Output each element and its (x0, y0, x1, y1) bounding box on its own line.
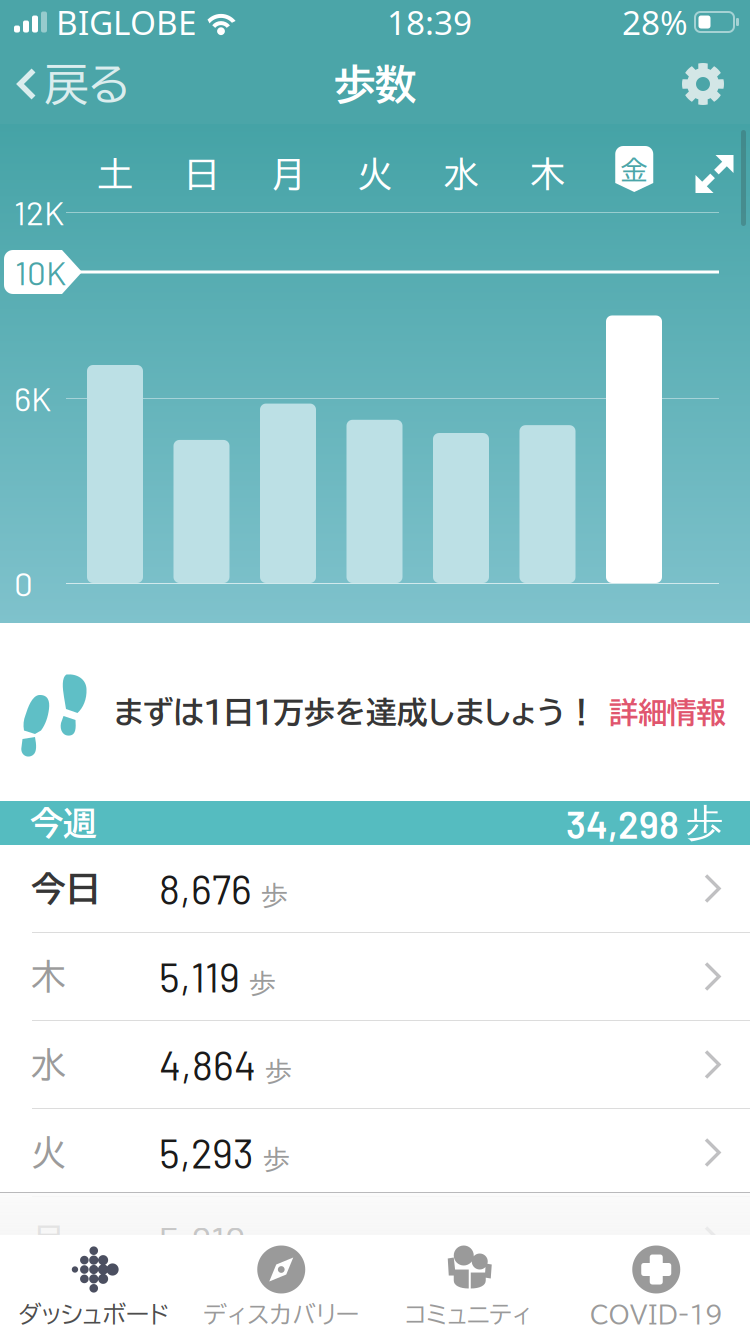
staticText: 水 (444, 157, 479, 191)
button[interactable]: グラフを拡大 (677, 137, 750, 211)
staticText: 5,119 (159, 952, 240, 1000)
button[interactable]: 土 (72, 137, 158, 211)
staticText: 木 (31, 959, 66, 994)
staticText: COVID-19 (590, 1302, 723, 1326)
button[interactable]: コミュニティ (375, 1235, 562, 1334)
staticText: 木 (530, 157, 565, 191)
button[interactable]: 詳細情報 (597, 675, 725, 749)
staticText: 歩 (246, 1234, 282, 1261)
staticText: 34,298 歩 (566, 799, 723, 846)
staticText: 5,293 (159, 1128, 254, 1176)
button[interactable]: ダッシュボード (0, 1235, 187, 1334)
button[interactable]: 木 (504, 137, 591, 211)
button[interactable]: 火 (331, 137, 418, 211)
staticText: 今日 (31, 871, 101, 906)
button[interactable]: COVID-19 (562, 1235, 750, 1334)
staticText: 火 (357, 157, 392, 191)
staticText: 4,864 (159, 1040, 256, 1088)
button[interactable]: ディスカバリー (187, 1235, 375, 1334)
staticText: 詳細情報 (609, 697, 725, 727)
staticText: 18:39 (387, 0, 472, 44)
staticText: 歩 (252, 882, 288, 909)
staticText: 28% (622, 0, 688, 44)
staticText: 歩 (240, 970, 276, 997)
button[interactable]: 水 (418, 137, 504, 211)
staticText: 6K (14, 378, 51, 418)
staticText: 金 (621, 157, 648, 183)
staticText: BIGLOBE (56, 0, 197, 44)
staticText: まずは１日１万歩を達成しましょう！ (114, 697, 597, 727)
button[interactable]: 設定 (660, 44, 750, 124)
button[interactable]: 木 (0, 933, 750, 1020)
staticText: 歩 (254, 1146, 290, 1173)
staticText: ディスカバリー (203, 1302, 359, 1326)
staticText: 月 (31, 1223, 66, 1258)
staticText: 12K (14, 192, 64, 232)
staticText: 戻る (44, 62, 130, 106)
button[interactable]: 月 (245, 137, 331, 211)
button[interactable]: 今日 (0, 845, 750, 932)
button[interactable]: 火 (0, 1109, 750, 1196)
staticText: 8,676 (159, 864, 252, 912)
staticText: ダッシュボード (18, 1302, 169, 1326)
staticText: 土 (98, 157, 133, 191)
staticText: 水 (31, 1047, 66, 1082)
staticText: 月 (271, 157, 306, 191)
button[interactable]: 水 (0, 1021, 750, 1108)
button[interactable]: 月 (0, 1197, 750, 1284)
staticText: 10K (15, 252, 66, 292)
button[interactable]: 戻る (0, 44, 144, 124)
staticText: 歩数 (334, 63, 416, 105)
staticText: 5,819 (159, 1216, 246, 1264)
button[interactable]: 金 (591, 137, 677, 211)
staticText: 今週 (30, 806, 96, 840)
staticText: コミュニティ (405, 1302, 532, 1326)
staticText: 火 (31, 1135, 66, 1170)
staticText: 0 (14, 563, 33, 603)
staticText: 日 (184, 157, 219, 191)
button[interactable]: 日 (158, 137, 245, 211)
staticText: 歩 (256, 1058, 292, 1085)
